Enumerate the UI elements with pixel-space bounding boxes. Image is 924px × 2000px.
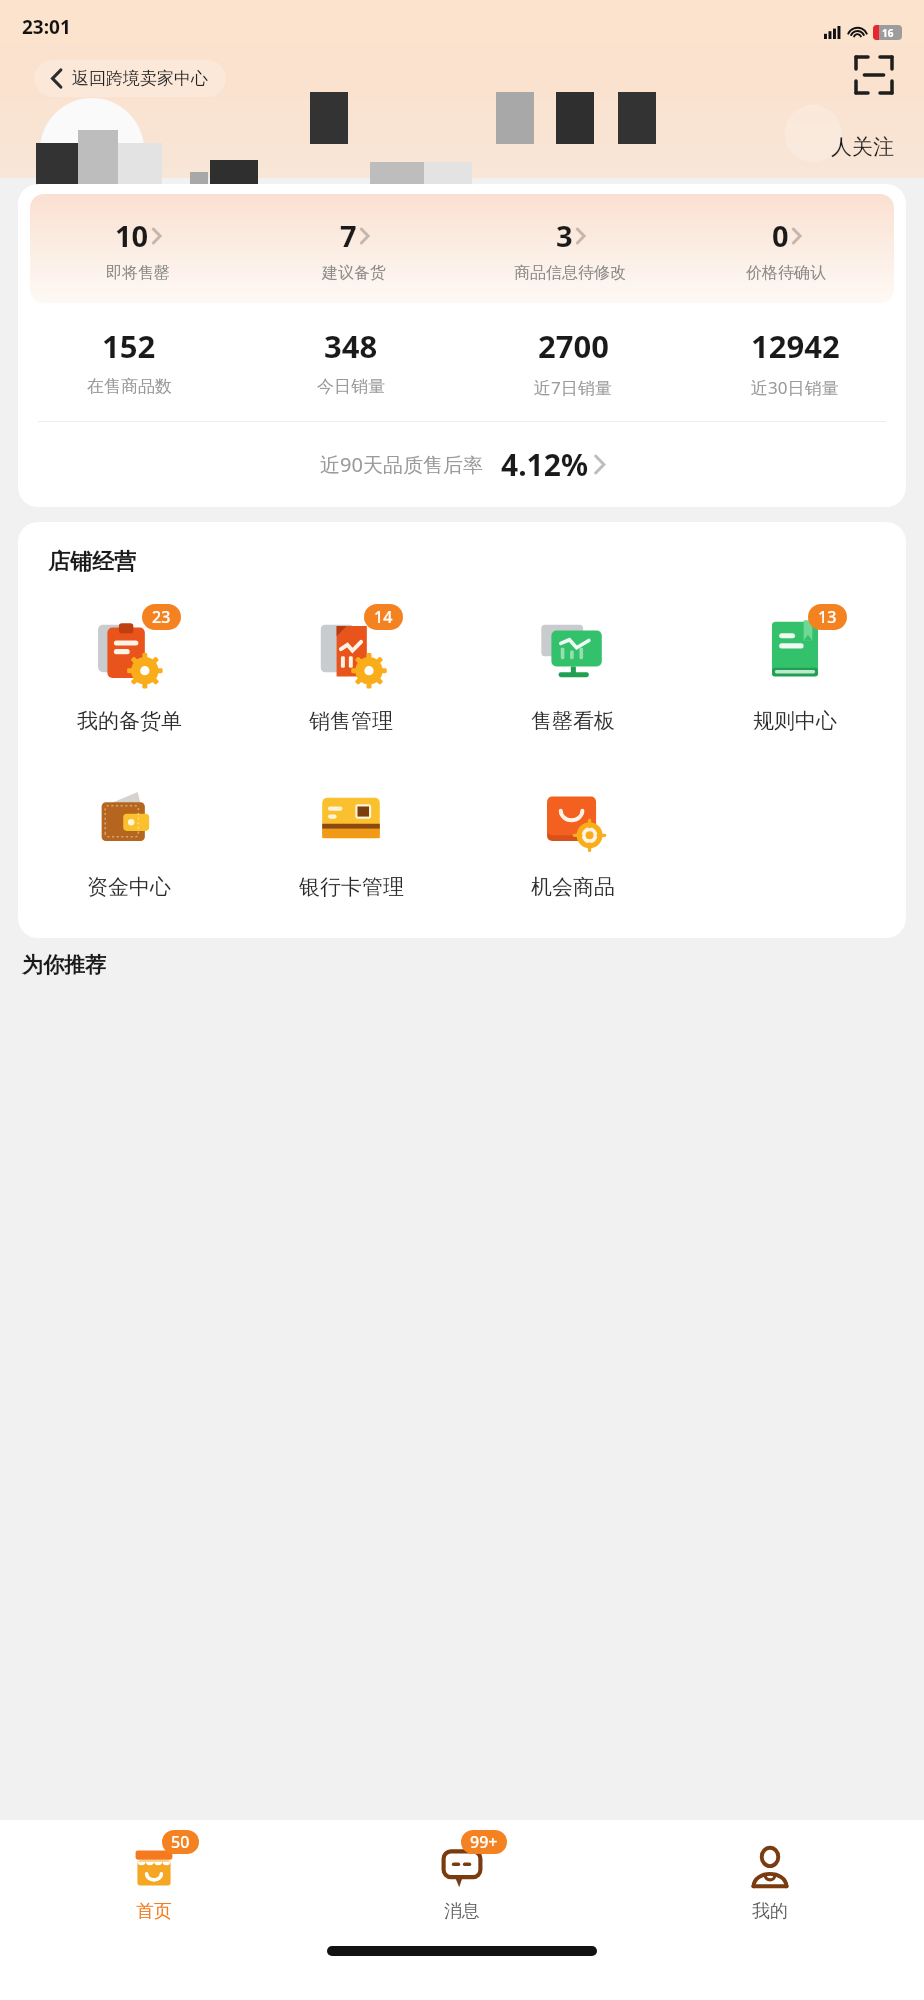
button[interactable]: 7 xyxy=(246,216,462,283)
staticText: 50 xyxy=(171,1831,190,1853)
staticText: 10 xyxy=(115,216,149,255)
staticText: 12942 xyxy=(751,325,840,367)
staticText: 人关注 xyxy=(831,134,894,160)
staticText: 4.12% xyxy=(501,444,588,485)
staticText: 今日销量 xyxy=(317,376,385,397)
staticText: 3 xyxy=(556,216,573,255)
staticText: 近7日销量 xyxy=(534,376,612,399)
staticText: 13 xyxy=(818,606,837,628)
button[interactable]: 售罄看板 xyxy=(462,602,684,738)
staticText: 资金中心 xyxy=(87,874,171,900)
staticText: 首页 xyxy=(136,1900,172,1923)
button[interactable]: 23 xyxy=(18,602,240,738)
staticText: 16 xyxy=(882,26,894,40)
button[interactable]: 0 xyxy=(678,216,894,283)
staticText: 近30日销量 xyxy=(751,376,839,399)
button[interactable]: 银行卡管理 xyxy=(240,768,462,904)
staticText: 销售管理 xyxy=(309,708,393,734)
button[interactable]: 3 xyxy=(462,216,678,283)
staticText: 14 xyxy=(374,606,393,628)
staticText: 2700 xyxy=(538,325,609,367)
staticText: 近90天品质售后率 xyxy=(320,451,483,478)
button[interactable]: 152 xyxy=(18,325,240,397)
staticText: 23 xyxy=(152,606,171,628)
button[interactable]: 99+ xyxy=(308,1820,616,1938)
button[interactable]: 机会商品 xyxy=(462,768,684,904)
button[interactable]: 13 xyxy=(684,602,906,738)
staticText: 在售商品数 xyxy=(87,376,172,397)
staticText: 建议备货 xyxy=(322,263,386,283)
staticText: 售罄看板 xyxy=(531,708,615,734)
staticText: 我的 xyxy=(752,1900,788,1923)
button[interactable]: 扫一扫 xyxy=(854,55,894,95)
button[interactable]: 10 xyxy=(30,216,246,283)
staticText: 99+ xyxy=(470,1831,498,1853)
staticText: 机会商品 xyxy=(531,874,615,900)
button[interactable]: 50 xyxy=(0,1820,308,1938)
staticText: 348 xyxy=(324,325,378,367)
button[interactable]: 348 xyxy=(240,325,462,397)
staticText: 为你推荐 xyxy=(22,952,106,978)
staticText: 商品信息待修改 xyxy=(514,263,626,283)
staticText: 价格待确认 xyxy=(746,263,826,283)
staticText: 店铺经营 xyxy=(48,548,136,576)
button[interactable]: 近90天品质售后率 xyxy=(18,422,906,507)
staticText: 152 xyxy=(102,325,156,367)
button[interactable]: 2700 xyxy=(462,325,684,399)
staticText: 7 xyxy=(340,216,357,255)
staticText: 我的备货单 xyxy=(77,708,182,734)
staticText: 银行卡管理 xyxy=(299,874,404,900)
staticText: 规则中心 xyxy=(753,708,837,734)
staticText: 23:01 xyxy=(22,14,71,40)
staticText: 消息 xyxy=(444,1900,480,1923)
staticText: 即将售罄 xyxy=(106,263,170,283)
button[interactable]: 资金中心 xyxy=(18,768,240,904)
staticText: 返回跨境卖家中心 xyxy=(72,68,208,89)
button[interactable]: 12942 xyxy=(684,325,906,399)
button[interactable]: 我的 xyxy=(616,1820,924,1938)
button[interactable]: 返回跨境卖家中心 xyxy=(34,60,226,97)
button[interactable]: 14 xyxy=(240,602,462,738)
staticText: 0 xyxy=(772,216,789,255)
